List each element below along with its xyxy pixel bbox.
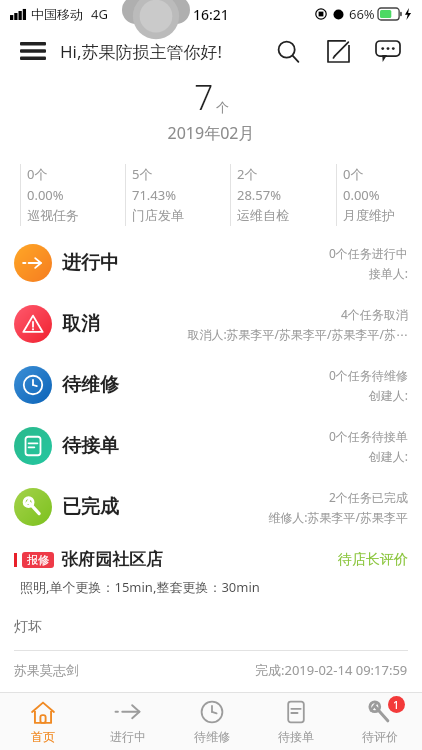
button[interactable]: 待接单 [0,415,422,476]
staticText: 0个 [343,165,364,183]
staticText: 4个任务取消 [341,306,408,322]
staticText: 待评价 [362,729,398,744]
staticText: 巡视任务 [27,207,79,223]
staticText: 创建人: [178,387,408,403]
staticText: 71.43% [132,186,177,204]
staticText: 待维修 [62,373,119,397]
button[interactable]: Compose [320,33,356,69]
staticText: 进行中 [110,729,146,744]
button[interactable]: 1 [338,693,422,750]
staticText: 待接单 [62,434,119,458]
staticText: 2个 [237,165,258,183]
staticText: 创建人: [178,448,408,464]
staticText: 0.00% [343,186,380,204]
staticText: 苏果莫志剑 [14,662,79,678]
button[interactable]: 待维修 [170,693,254,750]
staticText: 16:21 [193,5,229,24]
staticText: 取消 [62,312,100,336]
staticText: 照明,单个更换：15min,整套更换：30min [20,578,260,596]
staticText: 取消人:苏果李平/苏果李平/苏果李平/苏果… [178,326,408,342]
button[interactable]: 取消 [0,293,422,354]
staticText: 0个任务待维修 [329,367,408,383]
button[interactable]: 待接单 [254,693,338,750]
staticText: 7 [194,74,214,120]
staticText: 完成:2019-02-14 09:17:59 [255,661,408,679]
staticText: 运维自检 [237,207,289,223]
button[interactable]: 首页 [0,693,85,750]
staticText: 2个任务已完成 [329,489,408,505]
staticText: 待接单 [278,729,314,744]
staticText: 中国移动 [31,6,83,22]
button[interactable]: Menu [16,34,50,68]
staticText: 0个任务进行中 [329,245,408,261]
button[interactable]: 已完成 [0,476,422,537]
staticText: 个 [216,99,229,115]
staticText: 5个 [132,165,153,183]
staticText: 4G [91,5,108,23]
staticText: 门店发单 [132,207,184,223]
button[interactable]: 待维修 [0,354,422,415]
staticText: 1 [393,697,400,712]
staticText: 首页 [31,729,55,744]
staticText: 张府园社区店 [61,549,163,570]
staticText: 待维修 [194,729,230,744]
staticText: 接单人: [178,265,408,281]
staticText: 0个 [27,165,48,183]
button[interactable]: 进行中 [0,232,422,293]
staticText: 0个任务待接单 [329,428,408,444]
staticText: Hi,苏果防损主管你好! [60,40,223,63]
staticText: 66% [349,5,375,23]
button[interactable]: Messages [370,33,406,69]
staticText: 28.57% [237,186,282,204]
staticText: 维修人:苏果李平/苏果李平 [178,509,408,525]
staticText: 进行中 [62,251,119,275]
staticText: 2019年02月 [0,122,422,144]
staticText: 已完成 [62,495,119,519]
staticText: 待店长评价 [338,551,408,569]
button[interactable]: 进行中 [85,693,170,750]
staticText: 月度维护 [343,207,395,223]
staticText: 灯坏 [14,618,42,636]
button[interactable]: Search [270,33,306,69]
staticText: 0.00% [27,186,64,204]
button[interactable]: 报修 [0,543,422,689]
staticText: 报修 [27,553,49,567]
